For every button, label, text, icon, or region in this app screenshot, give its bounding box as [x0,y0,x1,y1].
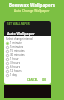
staticText: 12 hours [10,69,22,73]
staticText: OK [42,78,47,82]
staticText: SET WALLPAPER [7,22,30,26]
button[interactable]: OK [41,78,48,82]
staticText: 1 day [10,73,18,77]
button[interactable]: 1 hour [6,57,51,61]
button[interactable]: 15 minutes [6,49,51,53]
button[interactable]: 5 minutes [6,45,51,49]
button[interactable]: 1 minute [6,41,51,45]
staticText: Select change interval [6,37,33,41]
button[interactable]: 1 day [6,73,51,77]
button[interactable]: 3 hours [6,61,51,65]
button[interactable]: 30 minutes [6,53,51,57]
staticText: 15 minutes [10,49,25,53]
staticText: Auto Wallpaper [7,31,35,36]
staticText: CANCEL [27,78,38,82]
button[interactable]: CANCEL [26,78,39,82]
staticText: Auto Change Wallpaper [14,9,50,13]
staticText: 1 minute [10,41,22,45]
button[interactable]: 12 hours [6,69,51,73]
staticText: 1 hour [10,57,19,61]
staticText: Beeswax Wallpapers [9,2,55,8]
staticText: 30 minutes [10,53,25,57]
staticText: 6 hours [10,65,20,69]
staticText: 3 hours [10,61,20,65]
button[interactable]: 6 hours [6,65,51,69]
staticText: 5 minutes [10,45,24,49]
